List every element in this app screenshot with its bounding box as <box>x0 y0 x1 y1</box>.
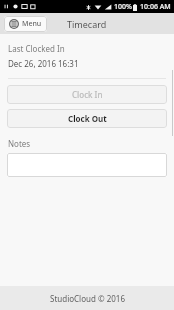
staticText: 100% <box>114 2 132 12</box>
staticText: Clock In <box>72 89 103 100</box>
staticText: Menu <box>22 19 42 29</box>
staticText: Last Clocked In <box>8 43 65 54</box>
staticText: StudioCloud © 2016 <box>50 293 125 304</box>
button[interactable]: Clock In <box>7 85 167 104</box>
staticText: Clock Out <box>68 113 107 124</box>
button[interactable] <box>7 153 167 177</box>
staticText: Timecard <box>67 18 107 30</box>
button[interactable]: Clock Out <box>7 109 167 128</box>
staticText: Notes <box>8 138 31 149</box>
button[interactable]: Menu <box>4 16 47 32</box>
staticText: 10:06 AM <box>140 2 171 12</box>
staticText: Dec 26, 2016 16:31 <box>8 58 79 69</box>
